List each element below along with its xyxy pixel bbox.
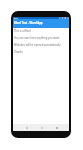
button[interactable]: Back bbox=[20, 124, 33, 131]
staticText: 9:41 bbox=[14, 17, 19, 19]
staticText: This is a Word bbox=[14, 29, 31, 33]
button[interactable]: Recents bbox=[50, 124, 63, 131]
staticText: Word Test - Word App bbox=[14, 21, 43, 25]
staticText: Thanks bbox=[14, 50, 23, 54]
button[interactable]: Home bbox=[35, 124, 48, 131]
staticText: Websites will be opened automatically bbox=[14, 43, 61, 47]
staticText: You can save here anything you want bbox=[14, 36, 60, 40]
button[interactable]: Word Test - Word App bbox=[13, 19, 69, 28]
